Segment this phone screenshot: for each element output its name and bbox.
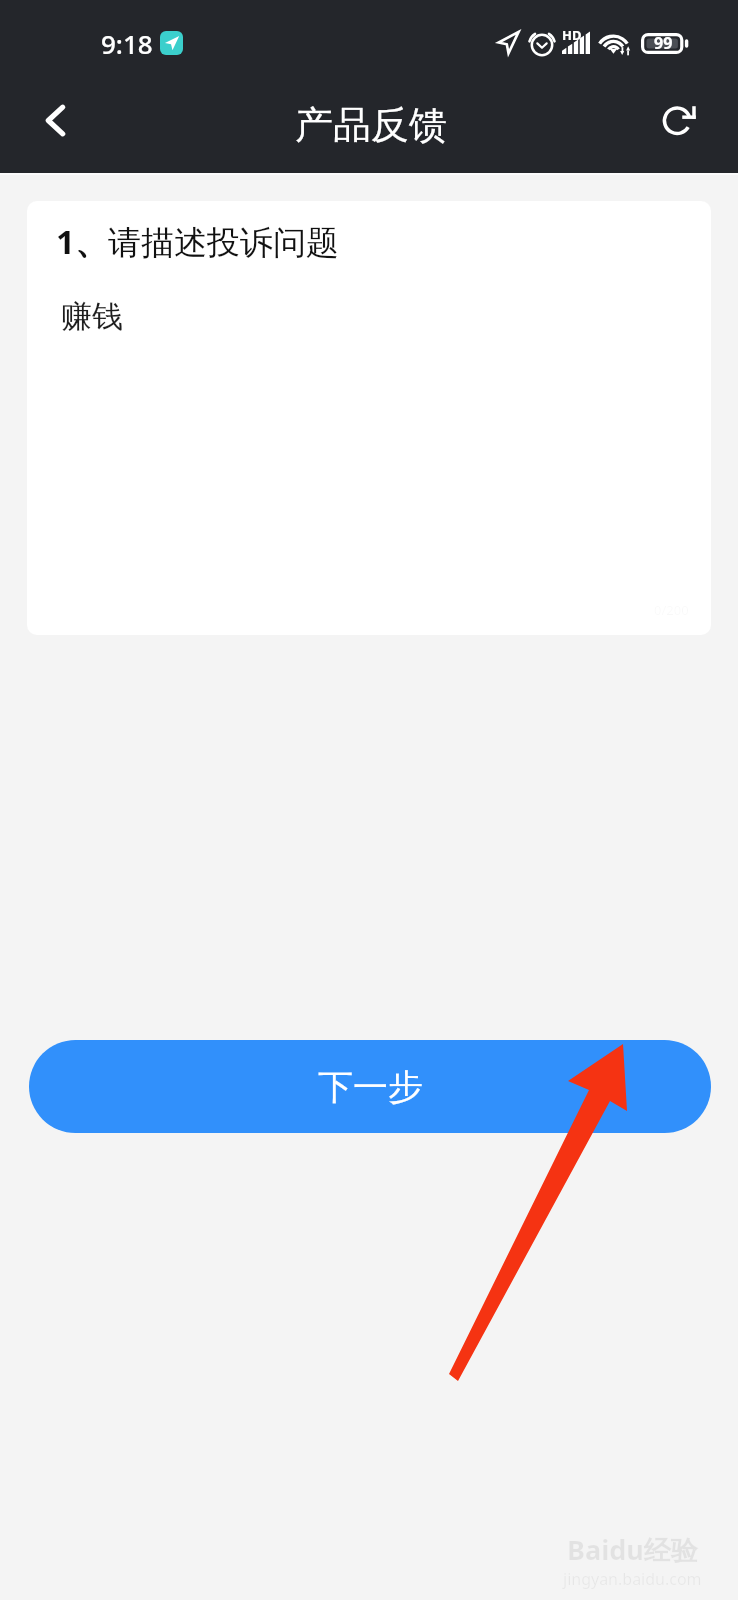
button[interactable]: Back (0, 75, 110, 166)
staticText: 99 (654, 32, 673, 54)
staticText: 赚钱 (61, 297, 123, 336)
staticText: 下一步 (318, 1065, 423, 1109)
button[interactable]: 下一步 (29, 1040, 711, 1133)
staticText: Baidu经验 (567, 1531, 698, 1568)
staticText: 产品反馈 (295, 101, 447, 149)
button[interactable]: Refresh (630, 73, 730, 164)
staticText: 1、 (56, 219, 108, 264)
staticText: 请描述投诉问题 (108, 222, 339, 264)
staticText: HD (562, 26, 582, 44)
button[interactable]: 0/200 (27, 201, 711, 635)
staticText: 9:18 (101, 26, 153, 61)
staticText: jingyan.baidu.com (563, 1568, 702, 1590)
